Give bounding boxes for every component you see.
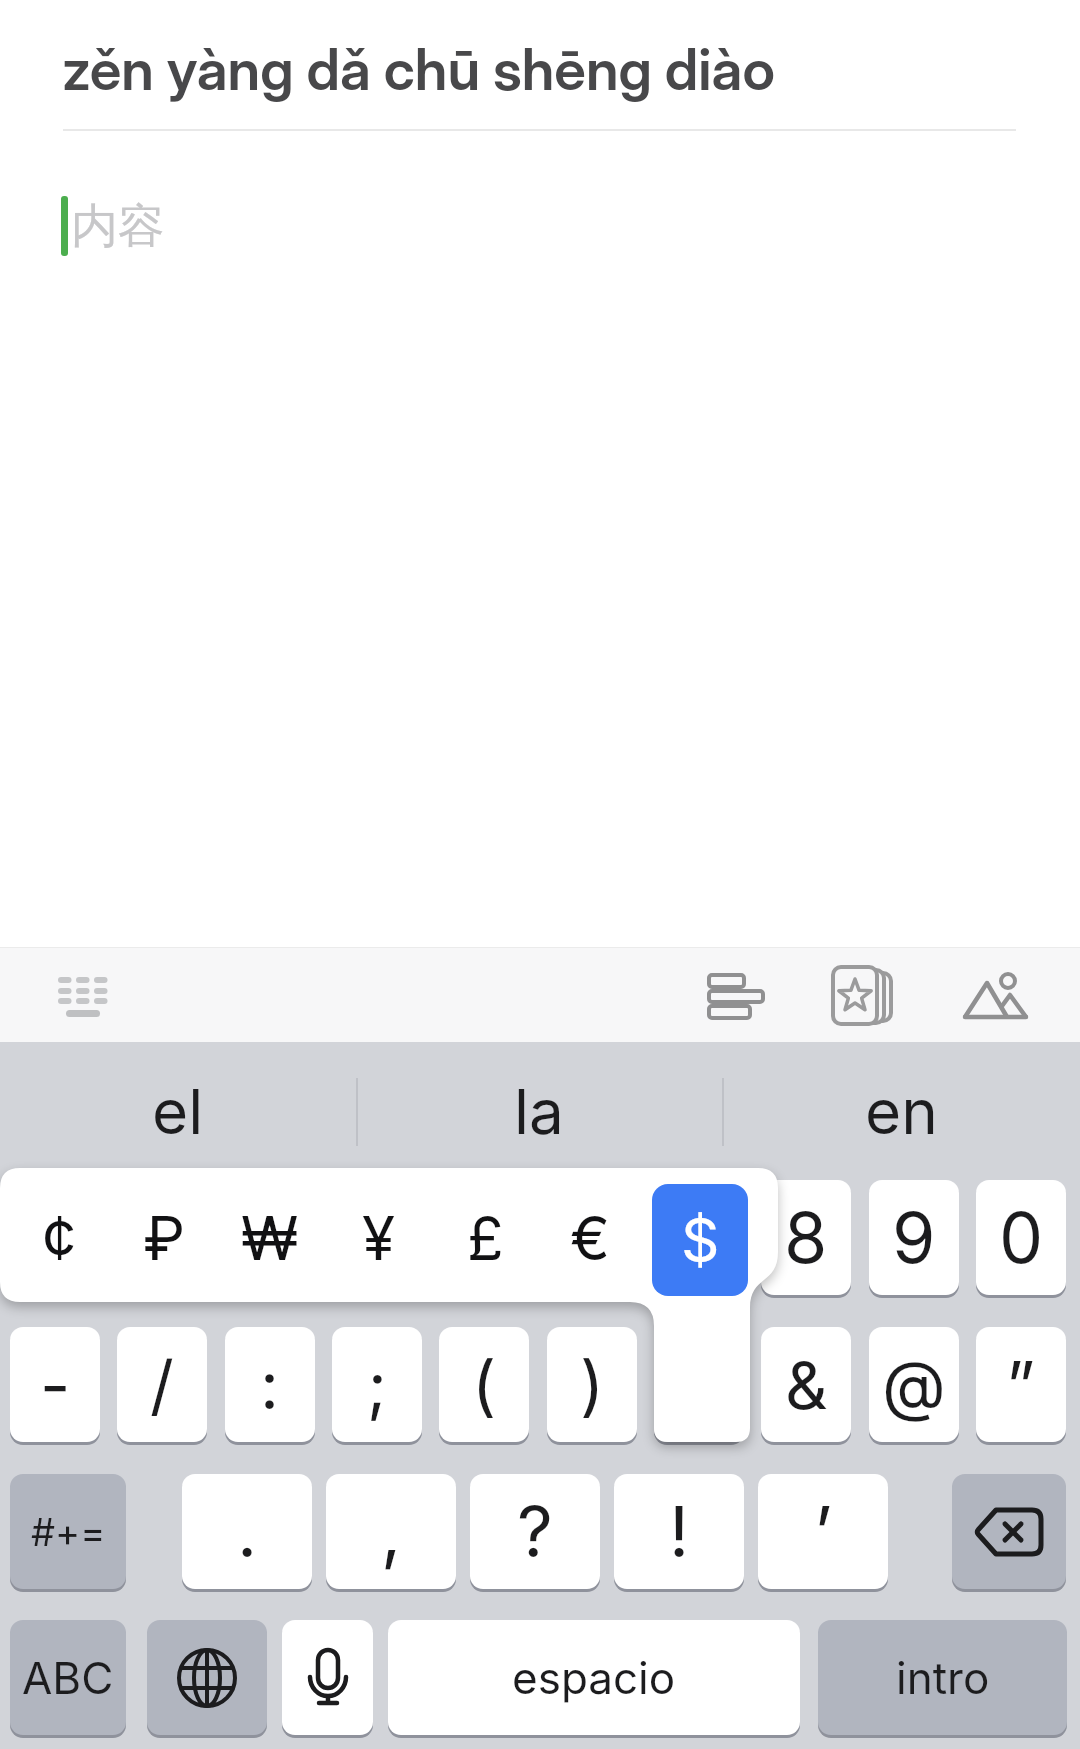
staticText: $ — [681, 1204, 720, 1277]
staticText: 3 — [248, 1195, 292, 1280]
button[interactable]: @ — [869, 1327, 959, 1442]
staticText: 2 — [141, 1195, 184, 1280]
button[interactable] — [654, 1327, 744, 1442]
staticText: intro — [896, 1651, 990, 1704]
button[interactable]: ? — [470, 1474, 600, 1589]
button[interactable]: ABC — [10, 1620, 126, 1735]
staticText: ) — [580, 1345, 605, 1425]
staticText: #+= — [31, 1509, 106, 1555]
button[interactable]: 6 — [547, 1180, 637, 1295]
button[interactable]: ( — [439, 1327, 529, 1442]
staticText: 9 — [892, 1195, 936, 1280]
staticText: & — [785, 1345, 828, 1425]
staticText: , — [381, 1489, 402, 1574]
button[interactable]: - — [10, 1327, 100, 1442]
button[interactable] — [282, 1620, 373, 1735]
button[interactable]: ” — [976, 1327, 1066, 1442]
staticText: el — [152, 1074, 204, 1149]
staticText: zěn yàng dǎ chū shēng diào — [62, 35, 775, 104]
staticText: ¢ — [42, 1202, 77, 1275]
button[interactable]: / — [117, 1327, 207, 1442]
button[interactable]: . — [182, 1474, 312, 1589]
staticText: 6 — [570, 1195, 614, 1280]
staticText: 4 — [354, 1195, 400, 1280]
button[interactable] — [697, 963, 775, 1025]
staticText: ? — [517, 1489, 553, 1574]
button[interactable]: & — [761, 1327, 851, 1442]
button[interactable]: ; — [332, 1327, 422, 1442]
button[interactable]: 7 — [654, 1180, 744, 1295]
button[interactable]: espacio — [388, 1620, 800, 1735]
button[interactable]: 0 — [976, 1180, 1066, 1295]
staticText: ₽ — [143, 1202, 186, 1275]
staticText: 1 — [41, 1195, 70, 1280]
staticText: ’ — [814, 1489, 833, 1574]
button[interactable]: ! — [614, 1474, 744, 1589]
staticText: ! — [669, 1489, 690, 1574]
button[interactable]: 8 — [761, 1180, 851, 1295]
button[interactable]: intro — [818, 1620, 1067, 1735]
staticText: ₩ — [241, 1202, 299, 1275]
staticText: : — [260, 1345, 280, 1425]
staticText: 7 — [679, 1195, 719, 1280]
button[interactable]: 9 — [869, 1180, 959, 1295]
staticText: 8 — [784, 1195, 828, 1280]
staticText: - — [40, 1345, 71, 1425]
button[interactable]: 3 — [225, 1180, 315, 1295]
staticText: la — [514, 1074, 564, 1149]
staticText: £ — [467, 1202, 504, 1275]
staticText: ¥ — [362, 1202, 395, 1275]
button[interactable]: 1 — [10, 1180, 100, 1295]
button[interactable] — [45, 963, 121, 1025]
button[interactable] — [147, 1620, 267, 1735]
staticText: en — [865, 1074, 938, 1149]
button[interactable]: , — [326, 1474, 456, 1589]
button[interactable]: la — [356, 1042, 722, 1180]
staticText: . — [237, 1489, 258, 1574]
staticText: 内容 — [71, 197, 165, 256]
button[interactable] — [953, 963, 1038, 1025]
staticText: @ — [882, 1345, 946, 1425]
staticText: ABC — [22, 1651, 114, 1704]
button[interactable]: 5 — [439, 1180, 529, 1295]
button[interactable]: 2 — [117, 1180, 207, 1295]
staticText: ” — [1006, 1345, 1036, 1425]
staticText: espacio — [512, 1651, 676, 1704]
button[interactable]: : — [225, 1327, 315, 1442]
staticText: 5 — [463, 1195, 506, 1280]
button[interactable]: ’ — [758, 1474, 888, 1589]
staticText: € — [570, 1202, 610, 1275]
staticText: / — [150, 1345, 174, 1425]
button[interactable] — [952, 1474, 1066, 1589]
staticText: ( — [472, 1345, 497, 1425]
button[interactable]: ) — [547, 1327, 637, 1442]
staticText: ; — [367, 1345, 387, 1425]
button[interactable]: el — [0, 1042, 356, 1180]
staticText: 0 — [999, 1195, 1044, 1280]
button[interactable]: en — [722, 1042, 1080, 1180]
button[interactable]: #+= — [10, 1474, 126, 1589]
button[interactable]: 4 — [332, 1180, 422, 1295]
button[interactable] — [823, 955, 903, 1033]
